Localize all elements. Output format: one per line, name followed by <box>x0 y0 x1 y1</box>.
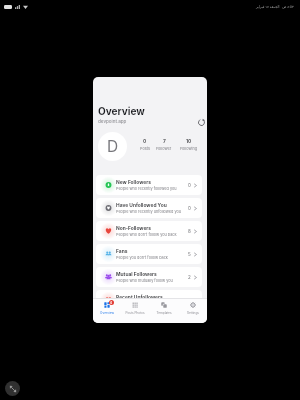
staticText: People who unfollowed recently <box>116 301 174 306</box>
staticText: D <box>107 137 119 156</box>
staticText: devpoint.app <box>98 119 127 125</box>
staticText: Recent Unfollowers <box>116 294 163 300</box>
staticText: Mutual Followers <box>116 271 157 277</box>
button[interactable]: Refresh <box>196 117 206 127</box>
staticText: Posts <box>140 146 150 151</box>
button[interactable]: Non-Followers <box>96 221 202 241</box>
staticText: People who don't follow you back <box>116 232 177 237</box>
button[interactable]: Fans <box>96 244 202 264</box>
button[interactable]: Settings <box>178 299 207 318</box>
staticText: Following <box>180 146 198 151</box>
button[interactable]: Posts Photos <box>121 299 149 318</box>
staticText: Settings <box>187 311 199 315</box>
staticText: 10 <box>186 138 192 144</box>
button[interactable]: Have Unfollowed You <box>96 198 202 218</box>
staticText: 5 <box>188 252 191 257</box>
staticText: People you don't follow back <box>116 255 168 260</box>
button[interactable]: Templates <box>149 299 178 318</box>
button[interactable]: 4 <box>93 299 121 318</box>
staticText: 8 <box>188 229 191 234</box>
staticText: Overview <box>100 311 114 315</box>
staticText: 0 <box>143 138 147 144</box>
staticText: Fans <box>116 248 128 254</box>
button[interactable]: New Followers <box>96 175 202 195</box>
staticText: Non-Followers <box>116 225 152 231</box>
staticText: 2 <box>188 275 191 280</box>
staticText: New Followers <box>116 179 151 185</box>
staticText: ٨:٥٣ ص الجمعة ١٧ فبراير <box>256 5 294 9</box>
staticText: 4 <box>110 301 113 305</box>
button[interactable]: Recent Unfollowers <box>96 290 202 310</box>
staticText: 0 <box>188 183 191 188</box>
staticText: Templates <box>156 311 172 315</box>
staticText: People who mutually follow you <box>116 278 173 283</box>
button[interactable]: Mutual Followers <box>96 267 202 287</box>
staticText: Posts Photos <box>125 311 145 315</box>
button[interactable]: Expand <box>5 381 20 396</box>
staticText: People who recently unfollowed you <box>116 209 182 214</box>
staticText: 0 <box>188 206 191 211</box>
staticText: Overview <box>98 105 145 117</box>
staticText: Have Unfollowed You <box>116 202 167 208</box>
staticText: 7 <box>163 138 166 144</box>
staticText: Follower <box>156 146 172 151</box>
staticText: People who recently followed you <box>116 186 177 191</box>
staticText: 1 <box>189 298 191 303</box>
